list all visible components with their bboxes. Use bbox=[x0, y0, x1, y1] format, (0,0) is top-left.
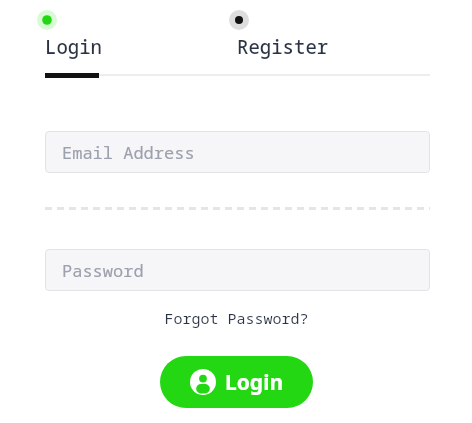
staticText: Login bbox=[225, 368, 284, 397]
button[interactable]: Email Address bbox=[45, 131, 430, 173]
staticText: Login bbox=[45, 34, 103, 60]
staticText: Register bbox=[237, 34, 329, 60]
staticText: Password bbox=[62, 259, 144, 282]
button[interactable]: Login bbox=[160, 356, 313, 408]
staticText: Email Address bbox=[62, 141, 195, 164]
button[interactable]: Login bbox=[45, 34, 103, 60]
button[interactable]: Password bbox=[45, 249, 430, 291]
button[interactable]: Register bbox=[237, 34, 329, 60]
staticText: Forgot Password? bbox=[164, 308, 309, 328]
button[interactable]: Login selected bbox=[37, 10, 57, 30]
button[interactable]: Register bbox=[229, 10, 249, 30]
button[interactable]: Forgot Password? bbox=[160, 306, 313, 330]
